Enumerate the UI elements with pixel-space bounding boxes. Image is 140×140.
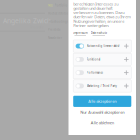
- staticText: Angelika Zwick: [3, 16, 51, 25]
- button[interactable]: Alle akzeptieren: [73, 96, 131, 107]
- staticText: Notwendig (immer aktiv): [87, 44, 120, 48]
- staticText: berechtigten Interesses zu gestalten und…: [73, 1, 131, 28]
- button[interactable]: Performance: [73, 66, 131, 79]
- staticText: Datenschutz: [91, 31, 107, 35]
- staticText: Newsletter: [48, 36, 62, 40]
- staticText: Funktional: [87, 58, 101, 61]
- staticText: Marketing / Third Party: [87, 84, 117, 88]
- staticText: NEU: [48, 4, 53, 7]
- button[interactable]: Notwendig (immer aktiv): [73, 40, 131, 52]
- staticText: Impressum: [73, 31, 87, 35]
- staticText: Alle ablehnen: [91, 120, 114, 125]
- button[interactable]: Impressum: [73, 31, 87, 35]
- staticText: Performance: [87, 71, 104, 74]
- button[interactable]: Alle ablehnen: [73, 117, 131, 128]
- button[interactable]: Marketing / Third Party: [73, 80, 131, 92]
- staticText: Alle akzeptieren: [88, 99, 116, 104]
- button[interactable]: Datenschutz: [91, 31, 107, 35]
- staticText: Nur Auswahl akzeptieren: [80, 109, 124, 115]
- button[interactable]: Funktional: [73, 53, 131, 65]
- button[interactable]: Nur Auswahl akzeptieren: [73, 107, 131, 117]
